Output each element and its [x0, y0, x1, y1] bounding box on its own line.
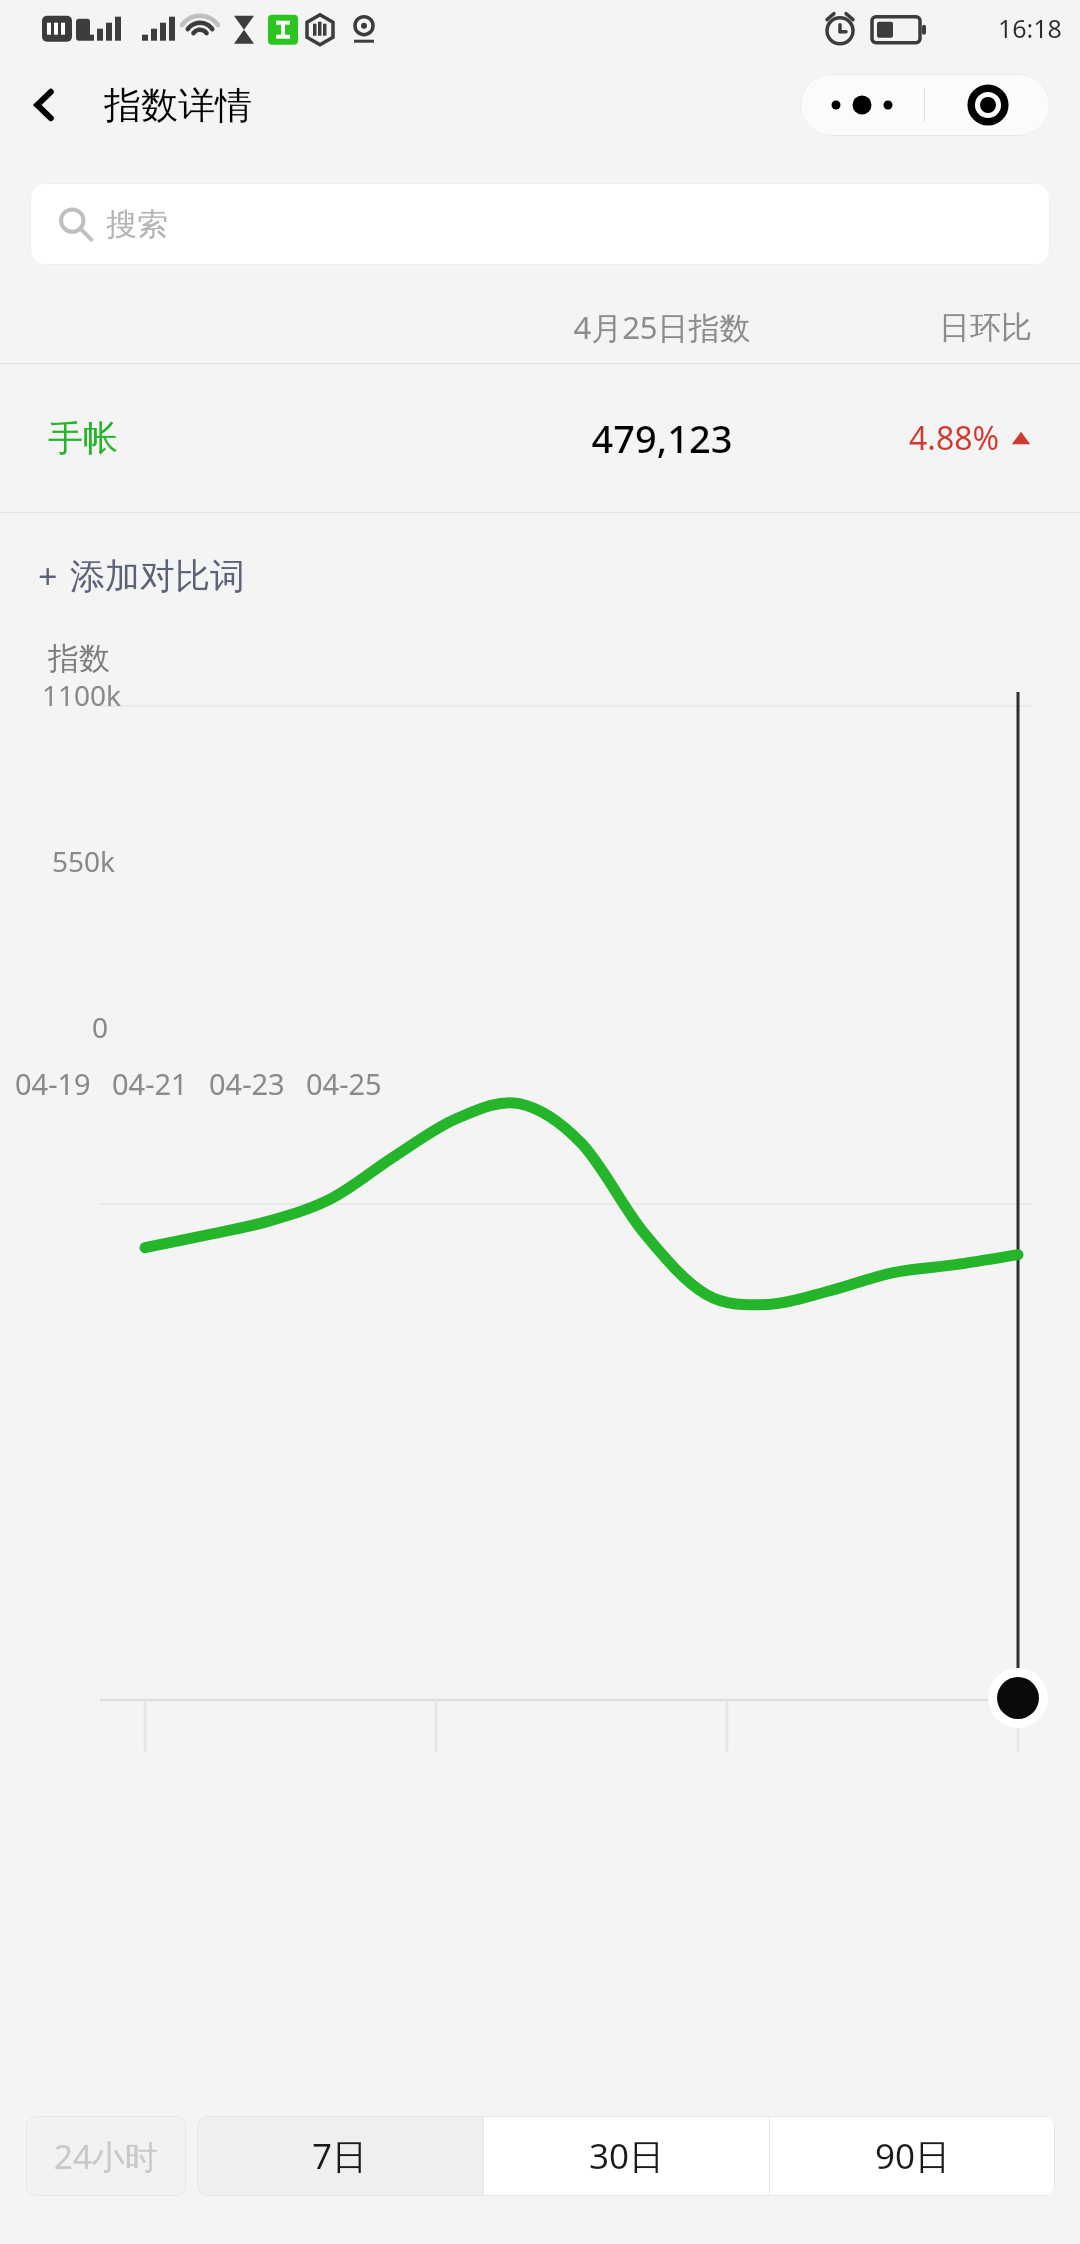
staticText: 479,123	[512, 412, 812, 464]
staticText: 4.88%	[909, 416, 1000, 460]
staticText: 90日	[875, 2132, 951, 2180]
staticText: 550k	[52, 842, 116, 880]
button[interactable]: 手帐	[0, 364, 1080, 512]
staticText: 指数	[48, 639, 110, 678]
staticText: 0	[92, 1008, 109, 1046]
staticText: 7日	[312, 2132, 368, 2180]
staticText: 04-19	[15, 1064, 91, 1103]
staticText: 04-21	[112, 1064, 188, 1103]
button[interactable]: 更多	[800, 74, 924, 136]
button[interactable]: 搜索	[30, 183, 1050, 265]
button[interactable]: 30日	[484, 2116, 769, 2196]
staticText: 24小时	[54, 2134, 158, 2179]
button[interactable]: 返回	[14, 73, 78, 137]
staticText: +	[38, 553, 58, 599]
staticText: 30日	[589, 2132, 665, 2180]
staticText: 手帐	[48, 416, 118, 460]
staticText: 搜索	[106, 205, 168, 244]
staticText: 4月25日指数	[512, 306, 812, 348]
button[interactable]: 24小时	[26, 2116, 186, 2196]
button[interactable]: 7日	[197, 2116, 483, 2196]
staticText: 添加对比词	[70, 554, 245, 598]
button[interactable]: 90日	[770, 2116, 1055, 2196]
staticText: 16:18	[998, 11, 1062, 45]
staticText: 04-25	[306, 1064, 382, 1103]
staticText: 日环比	[812, 308, 1032, 347]
button[interactable]: 关闭	[925, 74, 1050, 136]
button[interactable]: +	[28, 541, 255, 611]
staticText: 指数详情	[104, 82, 252, 129]
staticText: 1100k	[42, 676, 122, 714]
staticText: 04-23	[209, 1064, 285, 1103]
